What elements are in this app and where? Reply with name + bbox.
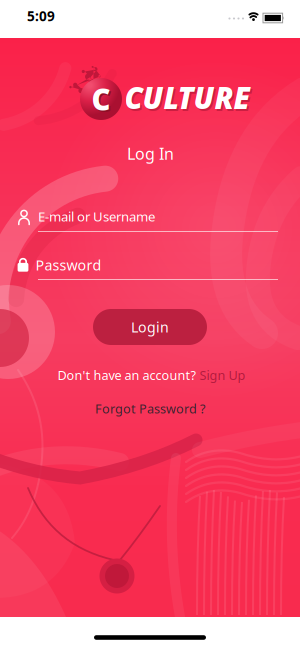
staticText: E-mail or Username [38, 207, 155, 225]
staticText: Log In [127, 143, 174, 164]
button[interactable]: E-mail or Username [0, 194, 300, 238]
button[interactable]: Sign Up [199, 366, 245, 384]
staticText: CULTURE [124, 78, 249, 117]
staticText: 5:09 [27, 7, 55, 25]
staticText: Login [131, 317, 169, 337]
staticText: Forgot Password ? [95, 400, 205, 417]
staticText: C [91, 79, 110, 118]
staticText: CULTURE [126, 80, 251, 119]
button[interactable]: Forgot Password ? [95, 400, 205, 417]
staticText: Password [35, 255, 101, 275]
button[interactable]: Login [93, 309, 207, 345]
staticText: C [93, 81, 112, 120]
staticText: Don't have an account? [57, 366, 195, 384]
staticText: Sign Up [199, 366, 245, 384]
button[interactable]: Password [0, 242, 300, 286]
